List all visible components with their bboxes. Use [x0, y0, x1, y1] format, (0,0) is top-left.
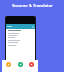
button[interactable]: Translate: [18, 62, 23, 67]
button[interactable]: Scan document: [6, 62, 11, 67]
staticText: Scanner & Translator: [12, 3, 53, 8]
button[interactable]: PDF: [29, 62, 34, 67]
